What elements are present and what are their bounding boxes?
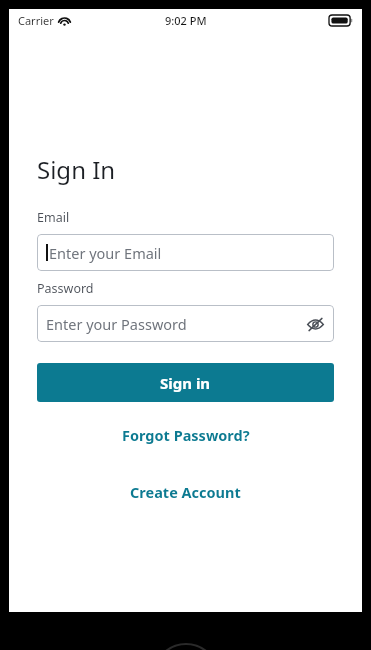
button[interactable]: Enter your Email (37, 234, 334, 271)
staticText: Password (37, 280, 94, 297)
staticText: Carrier (18, 13, 54, 28)
staticText: 9:02 PM (165, 13, 207, 28)
button[interactable]: Enter your Password (37, 305, 334, 342)
button[interactable]: Sign in (37, 363, 334, 402)
button[interactable]: Create Account (37, 477, 334, 507)
staticText: Sign in (160, 373, 211, 393)
staticText: Enter your Email (49, 243, 325, 263)
staticText: Email (37, 209, 70, 226)
button[interactable]: Forgot Password? (37, 420, 334, 450)
staticText: Create Account (130, 482, 241, 502)
staticText: Enter your Password (46, 314, 305, 334)
staticText: Sign In (37, 153, 116, 186)
staticText: Forgot Password? (122, 425, 250, 445)
button[interactable]: Show password (305, 314, 325, 334)
